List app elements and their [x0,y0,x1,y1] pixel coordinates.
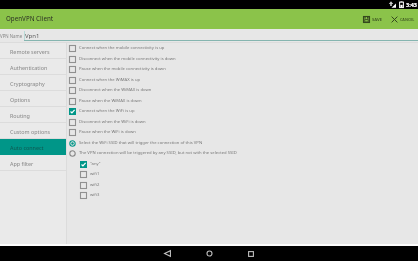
button[interactable]: Back [146,246,188,261]
staticText: Routing [10,112,30,119]
button[interactable]: Connect when the WiFi is up [69,106,418,116]
button[interactable]: Connect when the WiMAX is up [69,75,418,85]
staticText: Authentication [10,64,48,71]
staticText: SAVE [372,17,383,23]
button[interactable]: CANCEL [390,16,416,23]
button[interactable]: wifi3 [80,190,418,200]
button[interactable]: Auto connect [0,139,66,155]
button[interactable]: Connect when the mobile connectivity is … [69,43,418,53]
staticText: Connect when the WiFi is up [79,108,135,114]
staticText: The VPN connection will be triggered by … [79,150,237,156]
staticText: VPN Name [0,33,23,39]
button[interactable]: Select the WiFi SSID that will trigger t… [69,138,418,148]
button[interactable]: Home [188,246,230,261]
staticText: Connect when the mobile connectivity is … [79,45,165,51]
button[interactable]: SAVE [362,16,384,23]
staticText: Disconnect when the WiMAX is down [79,87,152,93]
staticText: wifi3 [90,192,100,198]
button[interactable]: Options [0,91,66,107]
staticText: OpenVPN Client [6,14,54,22]
staticText: Pause when the WiFi is down [79,129,136,135]
button[interactable]: Remote servers [0,43,66,59]
button[interactable]: Authentication [0,59,66,75]
button[interactable]: Disconnect when the WiFi is down [69,117,418,127]
button[interactable]: Pause when the WiFi is down [69,127,418,137]
button[interactable]: Pause when the WiMAX is down [69,96,418,106]
staticText: "any" [90,161,101,167]
button[interactable]: wifi1 [80,169,418,179]
staticText: Cryptography [10,80,45,87]
button[interactable]: The VPN connection will be triggered by … [69,148,418,158]
button[interactable]: App filter [0,155,66,171]
button[interactable]: Recent apps [230,246,272,261]
staticText: Select the WiFi SSID that will trigger t… [79,140,203,146]
staticText: Disconnect when the mobile connectivity … [79,56,176,62]
staticText: Remote servers [10,48,50,55]
staticText: CANCEL [400,17,415,22]
staticText: Auto connect [10,144,44,151]
button[interactable]: Disconnect when the mobile connectivity … [69,54,418,64]
button[interactable]: "any" [80,159,418,169]
button[interactable]: Cryptography [0,75,66,91]
staticText: wifi1 [90,171,100,177]
button[interactable]: Pause when the mobile connectivity is do… [69,64,418,74]
staticText: App filter [10,160,34,167]
staticText: Custom options [10,128,51,135]
button[interactable]: Routing [0,107,66,123]
staticText: 3:43 [406,1,417,8]
staticText: Vpn1 [25,32,40,40]
button[interactable]: Disconnect when the WiMAX is down [69,85,418,95]
staticText: Options [10,96,31,103]
staticText: Disconnect when the WiFi is down [79,119,146,125]
staticText: wifi2 [90,182,100,188]
staticText: Pause when the WiMAX is down [79,98,142,104]
staticText: Connect when the WiMAX is up [79,77,141,83]
button[interactable]: wifi2 [80,180,418,190]
button[interactable]: Custom options [0,123,66,139]
staticText: Pause when the mobile connectivity is do… [79,66,166,72]
